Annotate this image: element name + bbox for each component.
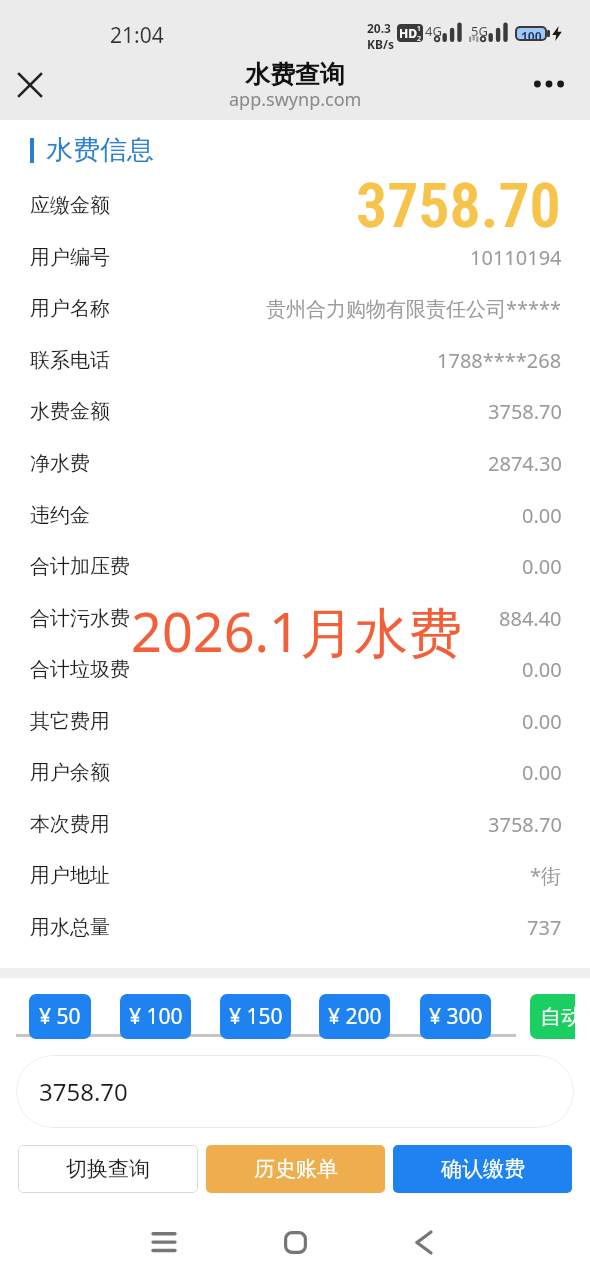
staticText: 1 <box>417 24 422 34</box>
staticText: 用户地址 <box>30 863 110 888</box>
staticText: KB/s <box>367 36 394 52</box>
staticText: 10110194 <box>470 244 562 271</box>
staticText: 2026.1月水费 <box>131 594 462 668</box>
button[interactable]: ¥ 300 <box>420 994 491 1039</box>
staticText: 2874.30 <box>488 450 562 477</box>
staticText: 切换查询 <box>66 1156 150 1182</box>
button[interactable]: Back <box>398 1216 450 1268</box>
staticText: 其它费用 <box>30 709 110 734</box>
button[interactable]: ¥ 50 <box>29 994 91 1039</box>
button[interactable]: ¥ 100 <box>120 994 191 1039</box>
staticText: 0.00 <box>522 708 562 735</box>
staticText: app.swynp.com <box>229 87 362 112</box>
staticText: 3758.70 <box>39 1075 128 1108</box>
button[interactable]: Home <box>269 1216 321 1268</box>
staticText: 自动缴费 <box>540 1004 575 1030</box>
staticText: 用户编号 <box>30 245 110 270</box>
staticText: 应缴金额 <box>30 193 110 218</box>
staticText: 0.00 <box>522 656 562 683</box>
button[interactable]: ¥ 150 <box>220 994 291 1039</box>
staticText: 水费金额 <box>30 399 110 424</box>
staticText: 0.00 <box>522 759 562 786</box>
staticText: 用水总量 <box>30 915 110 940</box>
staticText: 884.40 <box>499 605 562 632</box>
staticText: 21:04 <box>110 21 164 50</box>
staticText: 确认缴费 <box>441 1156 525 1182</box>
button[interactable]: 水费金额 <box>0 385 590 437</box>
staticText: 737 <box>527 914 562 941</box>
staticText: ¥ 200 <box>328 1002 382 1031</box>
staticText: 用户名称 <box>30 296 110 321</box>
button[interactable]: 合计垃圾费 <box>0 643 590 695</box>
button[interactable]: 合计加压费 <box>0 540 590 592</box>
staticText: 5G <box>471 22 488 40</box>
button[interactable]: 本次费用 <box>0 798 590 850</box>
button[interactable]: 合计污水费 <box>0 592 590 644</box>
staticText: 合计垃圾费 <box>30 657 130 682</box>
button[interactable]: 应缴金额 <box>0 179 590 231</box>
button[interactable]: More options <box>527 62 571 106</box>
button[interactable]: 其它费用 <box>0 695 590 747</box>
button[interactable]: 历史账单 <box>206 1145 385 1193</box>
staticText: 用户余额 <box>30 760 110 785</box>
staticText: 4G <box>425 22 442 40</box>
staticText: 水费查询 <box>245 59 345 90</box>
staticText: 20.3 <box>367 20 391 36</box>
staticText: 本次费用 <box>30 812 110 837</box>
button[interactable]: 3758.70 <box>16 1055 574 1128</box>
button[interactable]: Close <box>8 63 51 106</box>
staticText: 3758.70 <box>488 811 562 838</box>
staticText: 0.00 <box>522 502 562 529</box>
button[interactable]: 用水总量 <box>0 901 590 953</box>
button[interactable]: ¥ 200 <box>319 994 390 1039</box>
staticText: ¥ 150 <box>229 1002 283 1031</box>
button[interactable]: 净水费 <box>0 437 590 489</box>
button[interactable]: 联系电话 <box>0 334 590 386</box>
staticText: 0.00 <box>522 553 562 580</box>
button[interactable]: 用户地址 <box>0 849 590 901</box>
staticText: 1788****268 <box>437 347 562 374</box>
staticText: 2 <box>417 34 422 42</box>
staticText: 净水费 <box>30 451 90 476</box>
staticText: 历史账单 <box>254 1156 338 1182</box>
staticText: 水费信息 <box>46 133 154 167</box>
button[interactable]: 自动缴费 <box>530 994 575 1039</box>
staticText: ¥ 50 <box>39 1002 81 1031</box>
button[interactable]: 用户编号 <box>0 231 590 283</box>
staticText: *街 <box>530 862 562 889</box>
staticText: 违约金 <box>30 503 90 528</box>
staticText: 3758.70 <box>356 169 561 235</box>
staticText: 3758.70 <box>488 398 562 425</box>
button[interactable]: 用户名称 <box>0 282 590 334</box>
staticText: ¥ 100 <box>129 1002 183 1031</box>
button[interactable]: Recent apps <box>138 1216 190 1268</box>
staticText: 合计污水费 <box>30 606 130 631</box>
staticText: 100 <box>521 28 542 39</box>
staticText: 贵州合力购物有限责任公司***** <box>266 295 562 322</box>
staticText: 合计加压费 <box>30 554 130 579</box>
button[interactable]: 用户余额 <box>0 746 590 798</box>
button[interactable]: 违约金 <box>0 489 590 541</box>
staticText: ¥ 300 <box>429 1002 483 1031</box>
staticText: HD <box>399 25 417 41</box>
button[interactable]: 切换查询 <box>18 1145 198 1193</box>
button[interactable]: 确认缴费 <box>393 1145 572 1193</box>
staticText: 联系电话 <box>30 348 110 373</box>
